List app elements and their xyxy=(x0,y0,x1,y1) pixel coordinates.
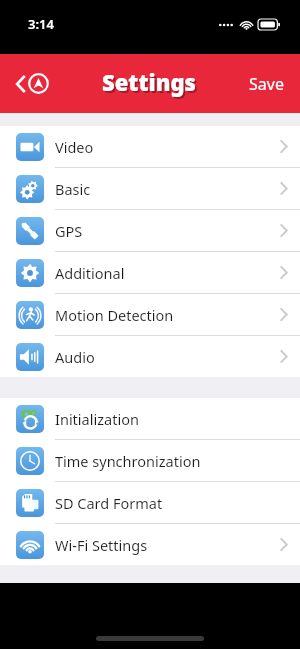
button[interactable]: Video xyxy=(0,126,300,167)
button[interactable]: GPS xyxy=(0,210,300,251)
staticText: Wi-Fi Settings xyxy=(55,535,280,555)
button[interactable]: SD Card Format xyxy=(0,482,300,523)
button[interactable]: Basic xyxy=(0,168,300,209)
button[interactable]: Motion Detection xyxy=(0,294,300,335)
button[interactable]: Save xyxy=(243,67,290,101)
staticText: Save xyxy=(249,73,284,95)
staticText: GPS xyxy=(55,221,280,241)
staticText: Initialization xyxy=(55,409,288,429)
staticText: Additional xyxy=(55,263,280,283)
button[interactable]: Initialization xyxy=(0,398,300,439)
button[interactable]: Wi-Fi Settings xyxy=(0,524,300,565)
staticText: Video xyxy=(55,137,280,157)
button[interactable]: Time synchronization xyxy=(0,440,300,481)
staticText: Time synchronization xyxy=(55,451,288,471)
staticText: Motion Detection xyxy=(55,305,280,325)
button[interactable]: Back xyxy=(12,67,53,100)
staticText: SD Card Format xyxy=(55,493,288,513)
staticText: Audio xyxy=(55,347,280,367)
staticText: Settings xyxy=(104,69,198,99)
staticText: Basic xyxy=(55,179,280,199)
button[interactable]: Additional xyxy=(0,252,300,293)
staticText: Settings xyxy=(102,67,196,97)
staticText: 3:14 xyxy=(28,15,54,33)
button[interactable]: Audio xyxy=(0,336,300,377)
